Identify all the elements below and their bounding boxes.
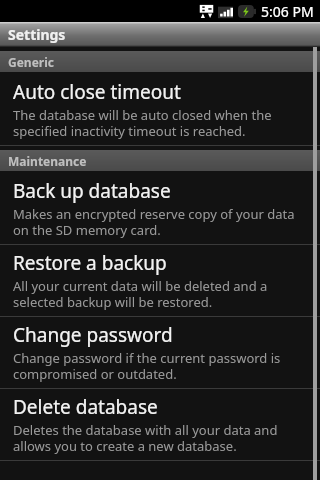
staticText: Change password if the current password … [13, 349, 306, 382]
staticText: Makes an encrypted reserve copy of your … [13, 205, 306, 238]
button[interactable]: Restore a backup [0, 245, 320, 316]
staticText: Deletes the database with all your data … [13, 421, 306, 454]
button[interactable]: Auto close timeout [0, 74, 320, 145]
button[interactable]: Change password [0, 317, 320, 388]
staticText: Back up database [13, 178, 171, 204]
button[interactable]: Delete database [0, 389, 320, 460]
staticText: Delete database [13, 394, 158, 420]
staticText: Settings [8, 25, 66, 44]
staticText: Change password [13, 322, 173, 348]
staticText: All your current data will be deleted an… [13, 277, 306, 310]
staticText: Maintenance [8, 153, 87, 169]
staticText: Restore a backup [13, 250, 167, 276]
staticText: Generic [8, 54, 54, 70]
staticText: 5:06 PM [261, 2, 314, 21]
button[interactable]: Back up database [0, 173, 320, 244]
staticText: Auto close timeout [13, 79, 181, 105]
staticText: The database will be auto closed when th… [13, 106, 306, 139]
